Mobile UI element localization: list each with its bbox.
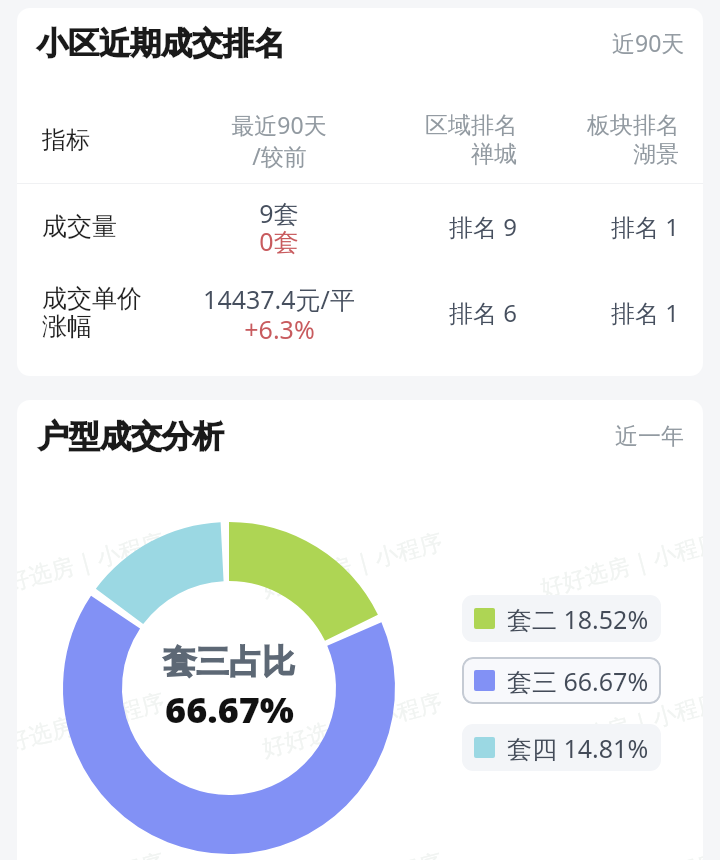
staticText: 近90天 (612, 27, 685, 58)
staticText: 户型成交分析 (38, 417, 224, 456)
staticText: 排名 9 (449, 210, 517, 243)
staticText: 66.67% (165, 685, 294, 734)
staticText: 好好选房 | 小程序 (17, 524, 168, 603)
button[interactable]: 套二 18.52% (462, 595, 661, 642)
staticText: 好好选房 | 小程序 (258, 524, 446, 603)
staticText: 成交单价 (42, 283, 142, 314)
staticText: 小区近期成交排名 (37, 24, 285, 63)
button[interactable]: 套三 66.67% (462, 657, 661, 704)
staticText: 最近90天 (231, 109, 327, 140)
button[interactable]: 套四 14.81% (462, 724, 661, 771)
staticText: 好好选房 | 小程序 (536, 524, 703, 603)
staticText: 套三占比 (163, 641, 295, 683)
staticText: 近一年 (615, 422, 684, 451)
staticText: +6.3% (244, 312, 315, 346)
staticText: 套三 66.67% (507, 664, 649, 698)
staticText: 排名 1 (611, 210, 679, 243)
staticText: 好好选房 | 小程序 (258, 844, 446, 860)
button[interactable]: 小区近期成交排名 (17, 8, 703, 376)
staticText: 板块排名 (587, 111, 679, 140)
staticText: 好好选房 | 小程序 (258, 684, 446, 763)
staticText: 指标 (42, 125, 90, 155)
staticText: 套四 14.81% (507, 731, 649, 765)
staticText: 排名 1 (611, 296, 679, 329)
staticText: 区域排名 (425, 111, 517, 140)
staticText: 9套 (259, 196, 299, 230)
staticText: 14437.4元/平 (203, 282, 355, 316)
staticText: /较前 (252, 140, 307, 171)
staticText: 套二 18.52% (507, 602, 649, 636)
staticText: 排名 6 (449, 296, 517, 329)
staticText: 好好选房 | 小程序 (17, 684, 168, 763)
staticText: 湖景 (633, 140, 679, 169)
staticText: 好好选房 | 小程序 (536, 684, 703, 763)
staticText: 成交量 (42, 211, 117, 242)
staticText: 涨幅 (42, 311, 92, 342)
staticText: 禅城 (471, 140, 517, 169)
staticText: 0套 (259, 224, 299, 258)
